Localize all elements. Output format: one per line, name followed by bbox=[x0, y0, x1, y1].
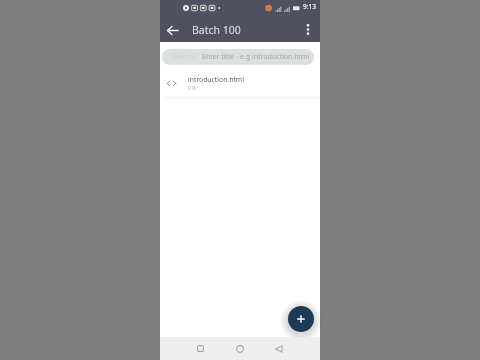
button[interactable]: Search bbox=[162, 49, 314, 65]
staticText: Batch 100 bbox=[192, 23, 241, 37]
staticText: Search bbox=[172, 52, 195, 62]
staticText: introduction.html bbox=[188, 75, 244, 84]
button[interactable]: Recents bbox=[188, 337, 212, 360]
button[interactable]: More options bbox=[296, 17, 320, 41]
button[interactable]: Home bbox=[228, 337, 252, 360]
button[interactable]: Back bbox=[267, 337, 291, 360]
staticText: Enter title - e.g introduction.html bbox=[202, 52, 310, 62]
staticText: 9:13 bbox=[303, 2, 316, 11]
button[interactable]: Back bbox=[160, 18, 184, 42]
button[interactable]: Add bbox=[288, 306, 314, 332]
staticText: 0 B bbox=[188, 85, 196, 92]
button[interactable]: introduction.html bbox=[160, 69, 320, 97]
